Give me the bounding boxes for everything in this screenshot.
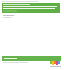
button[interactable]: Open section bbox=[2, 3, 60, 13]
button[interactable]: Footer bbox=[2, 56, 61, 61]
button[interactable]: Logo bbox=[49, 61, 61, 67]
